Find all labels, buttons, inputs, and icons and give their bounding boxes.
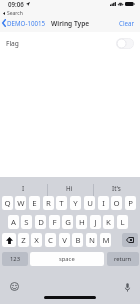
- button[interactable]: C: [45, 233, 56, 247]
- staticText: O: [113, 198, 120, 209]
- button[interactable]: K: [103, 215, 114, 229]
- staticText: C: [48, 235, 53, 246]
- staticText: G: [65, 217, 71, 228]
- staticText: return: [114, 255, 132, 263]
- button[interactable]: Y: [70, 196, 81, 210]
- button[interactable]: Flag: [0, 32, 140, 55]
- staticText: 123: [10, 255, 20, 263]
- button[interactable]: P: [125, 196, 136, 210]
- button[interactable]: I: [98, 196, 109, 210]
- button[interactable]: Search: [3, 9, 23, 17]
- button[interactable]: 123: [2, 252, 28, 266]
- button[interactable]: Hi: [46, 182, 93, 195]
- staticText: W: [17, 198, 25, 209]
- staticText: Wiring Type: [51, 19, 90, 28]
- button[interactable]: M: [100, 233, 111, 247]
- button[interactable]: Dictate: [125, 283, 130, 292]
- button[interactable]: B: [72, 233, 83, 247]
- button[interactable]: V: [59, 233, 70, 247]
- button[interactable]: It's: [93, 182, 140, 195]
- staticText: L: [120, 217, 125, 228]
- button[interactable]: I: [0, 182, 46, 195]
- staticText: X: [34, 235, 39, 246]
- staticText: 09:06: [8, 0, 24, 8]
- staticText: I: [22, 184, 25, 193]
- staticText: DEMO-10015: [7, 19, 46, 27]
- button[interactable]: T: [56, 196, 67, 210]
- button[interactable]: S: [21, 215, 32, 229]
- staticText: M: [102, 235, 110, 246]
- button[interactable]: Backspace: [122, 233, 138, 247]
- staticText: N: [89, 235, 95, 246]
- button[interactable]: Emoji keyboard: [10, 282, 19, 291]
- button[interactable]: Q: [2, 196, 13, 210]
- button[interactable]: Z: [18, 233, 29, 247]
- button[interactable]: U: [84, 196, 95, 210]
- button[interactable]: D: [35, 215, 46, 229]
- button[interactable]: space: [30, 252, 104, 266]
- staticText: Z: [21, 235, 26, 246]
- button[interactable]: W: [15, 196, 26, 210]
- staticText: K: [106, 217, 111, 228]
- staticText: V: [62, 235, 67, 246]
- staticText: Flag: [6, 39, 19, 48]
- staticText: Q: [4, 198, 11, 209]
- button[interactable]: L: [117, 215, 128, 229]
- button[interactable]: G: [62, 215, 73, 229]
- button[interactable]: E: [29, 196, 40, 210]
- staticText: E: [32, 198, 37, 209]
- staticText: Search: [7, 10, 23, 17]
- button[interactable]: J: [90, 215, 101, 229]
- staticText: P: [128, 198, 133, 209]
- staticText: R: [46, 198, 51, 209]
- button[interactable]: [116, 38, 134, 49]
- staticText: I: [102, 198, 105, 209]
- staticText: U: [87, 198, 93, 209]
- staticText: T: [59, 198, 64, 209]
- button[interactable]: Back: [2, 19, 46, 27]
- button[interactable]: return: [107, 252, 139, 266]
- button[interactable]: R: [43, 196, 54, 210]
- other: Back: [2, 19, 6, 27]
- button[interactable]: X: [31, 233, 42, 247]
- button[interactable]: Shift: [2, 233, 16, 247]
- staticText: Y: [73, 198, 78, 209]
- staticText: space: [59, 255, 75, 263]
- staticText: F: [52, 217, 57, 228]
- staticText: D: [38, 217, 44, 228]
- button[interactable]: A: [8, 215, 19, 229]
- button[interactable]: O: [111, 196, 122, 210]
- button[interactable]: N: [86, 233, 97, 247]
- staticText: H: [79, 217, 85, 228]
- button[interactable]: Clear: [119, 19, 135, 27]
- staticText: S: [24, 217, 29, 228]
- staticText: J: [94, 217, 97, 228]
- staticText: B: [75, 235, 81, 246]
- staticText: It's: [112, 184, 121, 193]
- button[interactable]: H: [76, 215, 87, 229]
- button[interactable]: F: [49, 215, 60, 229]
- staticText: A: [11, 217, 16, 228]
- staticText: Hi: [66, 184, 73, 193]
